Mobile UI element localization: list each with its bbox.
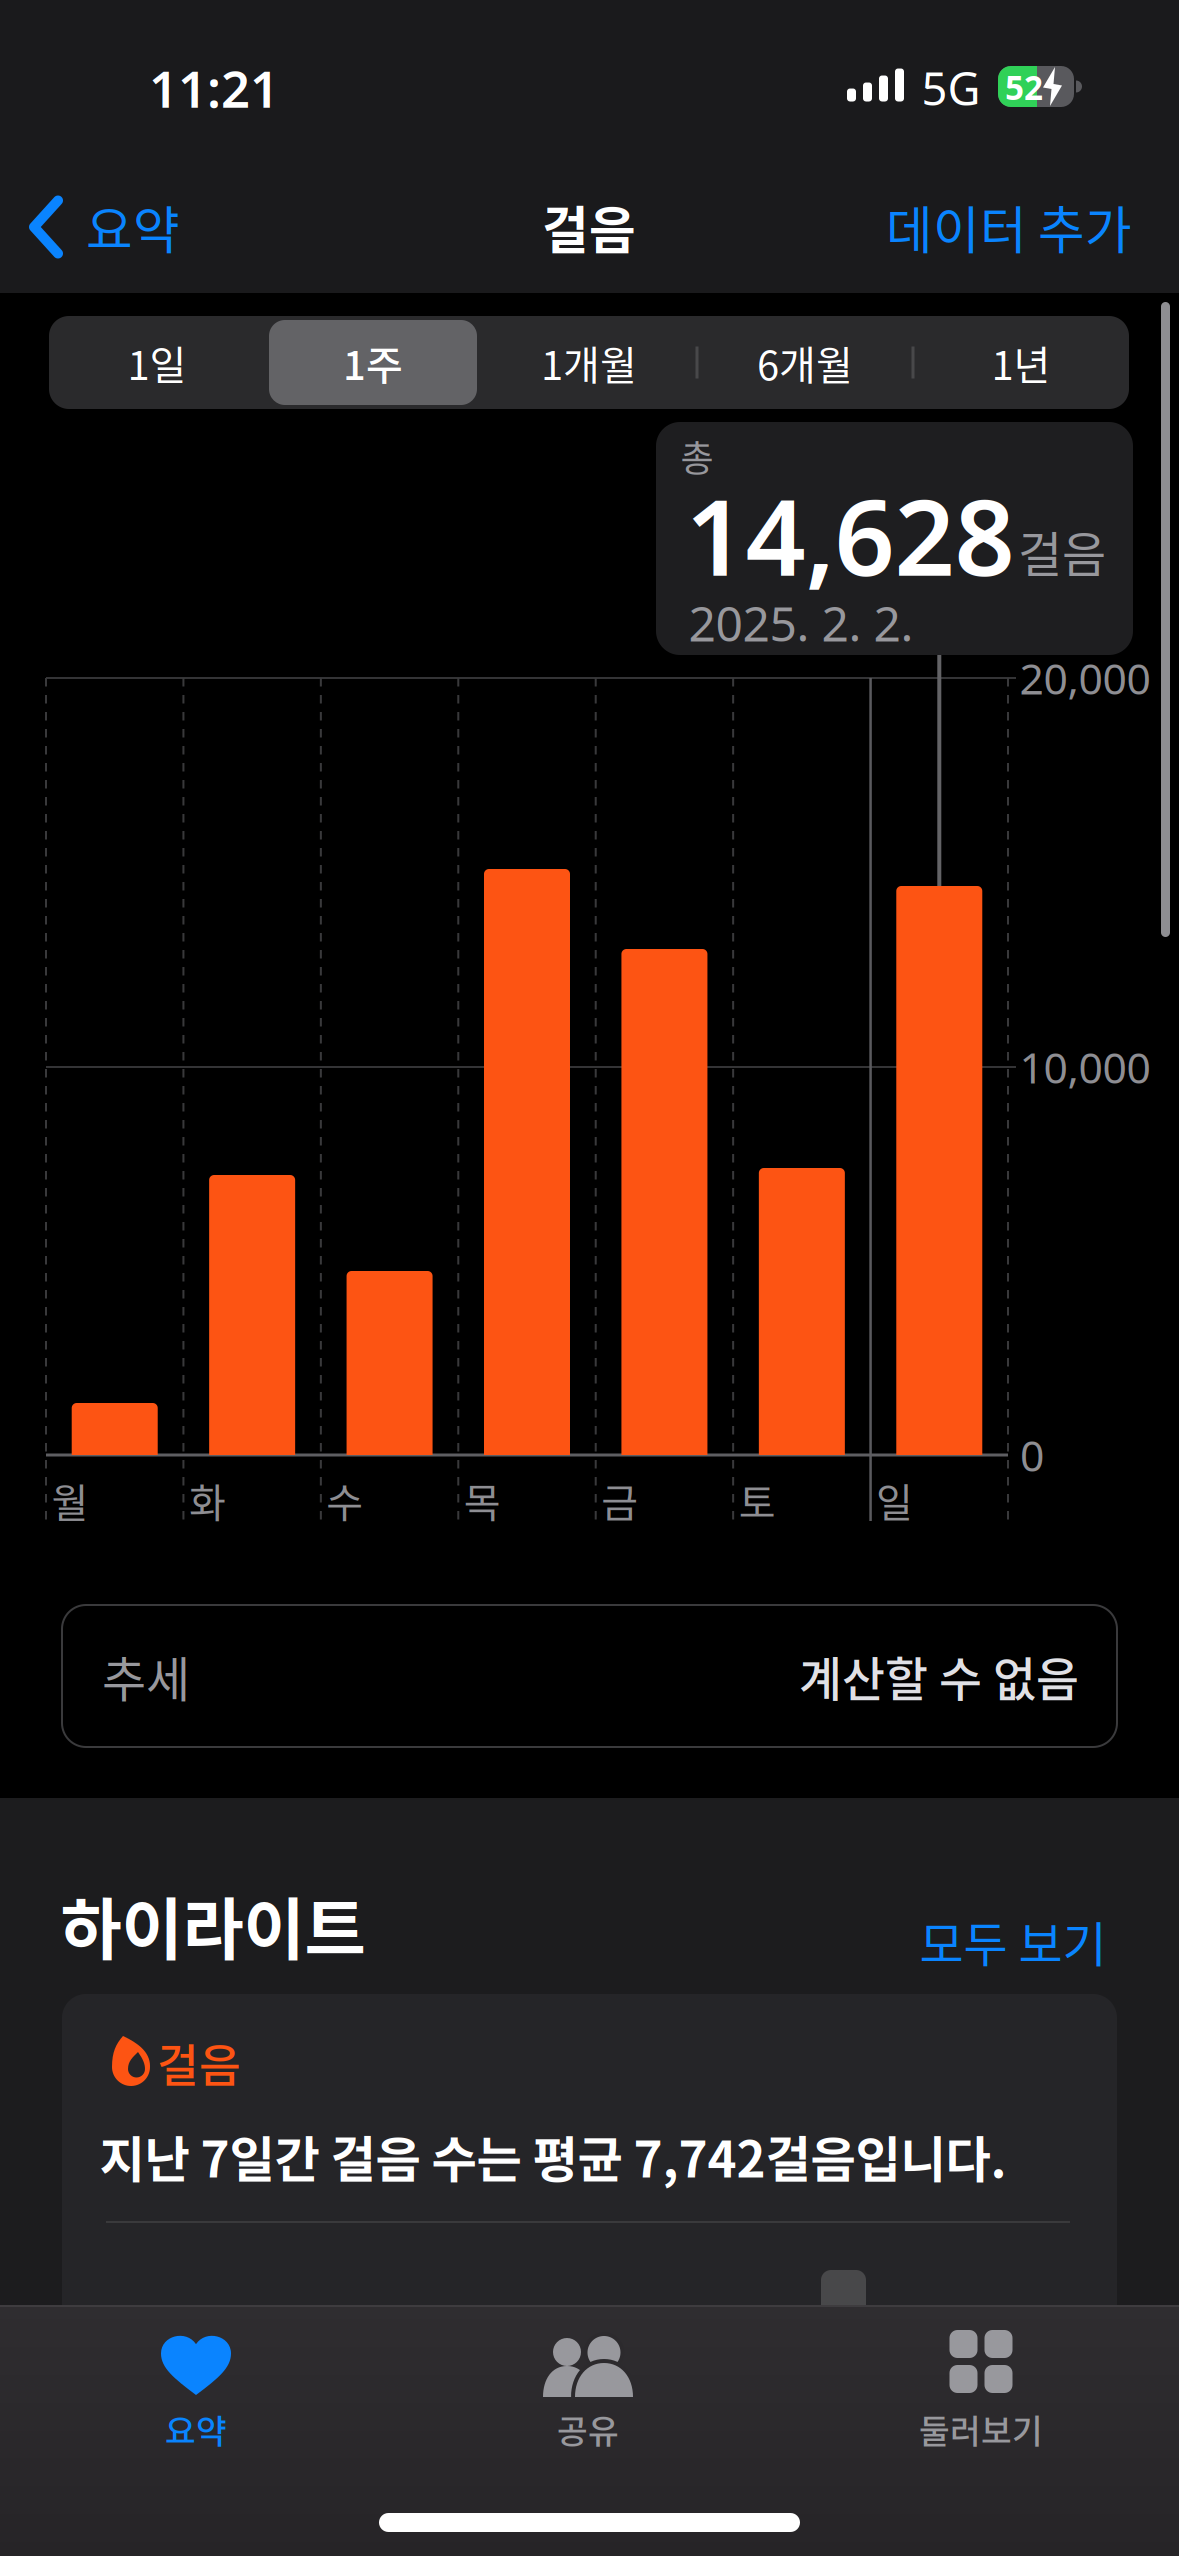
staticText: 월 (51, 1471, 88, 1529)
staticText: 5G (921, 58, 980, 118)
button[interactable]: 1개월 (481, 316, 697, 409)
staticText: 20,000 (1019, 650, 1150, 706)
staticText: 6개월 (757, 333, 853, 391)
staticText: 공유 (557, 2405, 619, 2453)
staticText: 금 (601, 1471, 638, 1529)
button[interactable]: 1주 (265, 316, 481, 409)
staticText: 걸음 (1018, 516, 1106, 586)
button[interactable]: 1일 (49, 316, 265, 409)
staticText: 1년 (991, 333, 1050, 391)
button[interactable]: 둘러보기 (816, 2295, 1146, 2475)
staticText: 일 (876, 1471, 913, 1529)
staticText: 걸음 (157, 2030, 241, 2096)
staticText: 지난 7일간 걸음 수는 평균 7,742걸음입니다. (99, 2120, 1006, 2192)
staticText: 11:21 (149, 54, 279, 122)
staticText: 1일 (127, 333, 186, 391)
staticText: 1주 (343, 333, 403, 391)
staticText: 2025. 2. 2. (688, 591, 913, 655)
staticText: 요약 (165, 2405, 227, 2453)
staticText: 데이터 추가 (886, 190, 1132, 264)
button[interactable]: 요약 (31, 2295, 361, 2475)
button[interactable]: 뒤로 (30, 190, 180, 264)
button[interactable]: 모두 보기 (919, 1906, 1106, 1976)
staticText: 모두 보기 (919, 1906, 1106, 1976)
button[interactable]: 1년 (913, 316, 1129, 409)
button[interactable]: 걸음 (62, 1994, 1117, 2534)
staticText: 화 (189, 1471, 226, 1529)
staticText: 둘러보기 (919, 2405, 1043, 2453)
staticText: 10,000 (1019, 1039, 1150, 1095)
staticText: 토 (739, 1471, 776, 1529)
staticText: 14,628 (685, 465, 1014, 605)
staticText: 목 (464, 1471, 501, 1529)
button[interactable]: 6개월 (697, 316, 913, 409)
staticText: 계산할 수 없음 (799, 1642, 1079, 1710)
staticText: 1개월 (541, 333, 637, 391)
staticText: 수 (326, 1471, 363, 1529)
staticText: 52 (1005, 65, 1043, 109)
staticText: 하이라이트 (60, 1877, 365, 1973)
staticText: 추세 (102, 1641, 190, 1711)
staticText: 요약 (86, 190, 180, 264)
button[interactable]: 데이터 추가 (886, 190, 1132, 264)
staticText: 0 (1020, 1427, 1044, 1483)
button[interactable]: 공유 (423, 2295, 753, 2475)
staticText: 총 (680, 430, 713, 482)
staticText: 걸음 (542, 190, 636, 264)
